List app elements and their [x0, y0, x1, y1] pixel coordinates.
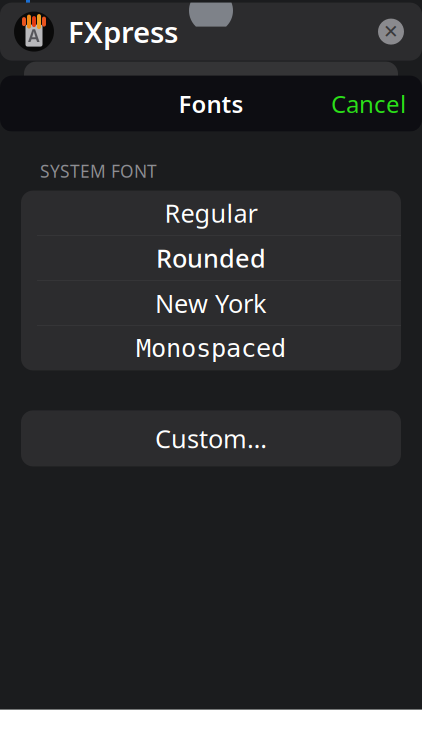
staticText: Fonts	[178, 88, 243, 120]
button[interactable]: Monospaced	[21, 326, 401, 370]
staticText: Monospaced	[136, 334, 286, 363]
button[interactable]: Regular	[21, 191, 401, 235]
button[interactable]: New York	[21, 281, 401, 325]
button[interactable]: Rounded	[21, 236, 401, 280]
staticText: New York	[155, 286, 267, 320]
staticText: Cancel	[331, 88, 406, 120]
staticText: ✕	[383, 21, 399, 42]
staticText: Regular	[164, 196, 257, 230]
button[interactable]: Custom…	[21, 410, 401, 466]
staticText: A	[28, 24, 40, 47]
staticText: Custom…	[155, 422, 267, 455]
staticText: SYSTEM FONT	[40, 160, 157, 183]
button[interactable]: Close	[374, 15, 408, 49]
staticText: Rounded	[156, 241, 266, 275]
button[interactable]: Cancel	[315, 80, 422, 128]
staticText: FXpress	[68, 12, 178, 51]
